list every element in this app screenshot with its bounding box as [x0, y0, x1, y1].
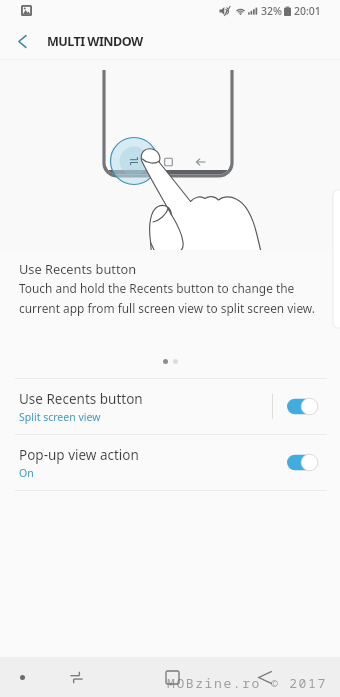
- button[interactable]: Use Recents button: [0, 379, 340, 434]
- staticText: Use Recents button: [19, 390, 143, 408]
- staticText: MULTI WINDOW: [47, 33, 143, 50]
- staticText: Split screen view: [19, 410, 101, 424]
- button[interactable]: Recents: [56, 657, 96, 697]
- button[interactable]: Back: [245, 657, 285, 697]
- button[interactable]: Toggle: [287, 453, 319, 472]
- button[interactable]: Home: [152, 657, 192, 697]
- staticText: Pop-up view action: [19, 446, 139, 464]
- staticText: Touch and hold the Recents button to cha…: [19, 280, 336, 316]
- staticText: 20:01: [294, 4, 321, 18]
- staticText: MOBzine.ro © 2017: [167, 674, 327, 692]
- button[interactable]: Navigate up: [0, 22, 44, 60]
- button[interactable]: Toggle: [287, 397, 319, 416]
- staticText: On: [19, 466, 34, 480]
- button[interactable]: Menu: [4, 657, 40, 697]
- staticText: Use Recents button: [19, 260, 137, 277]
- staticText: 32%: [261, 4, 282, 18]
- button[interactable]: Pop-up view action: [0, 435, 340, 490]
